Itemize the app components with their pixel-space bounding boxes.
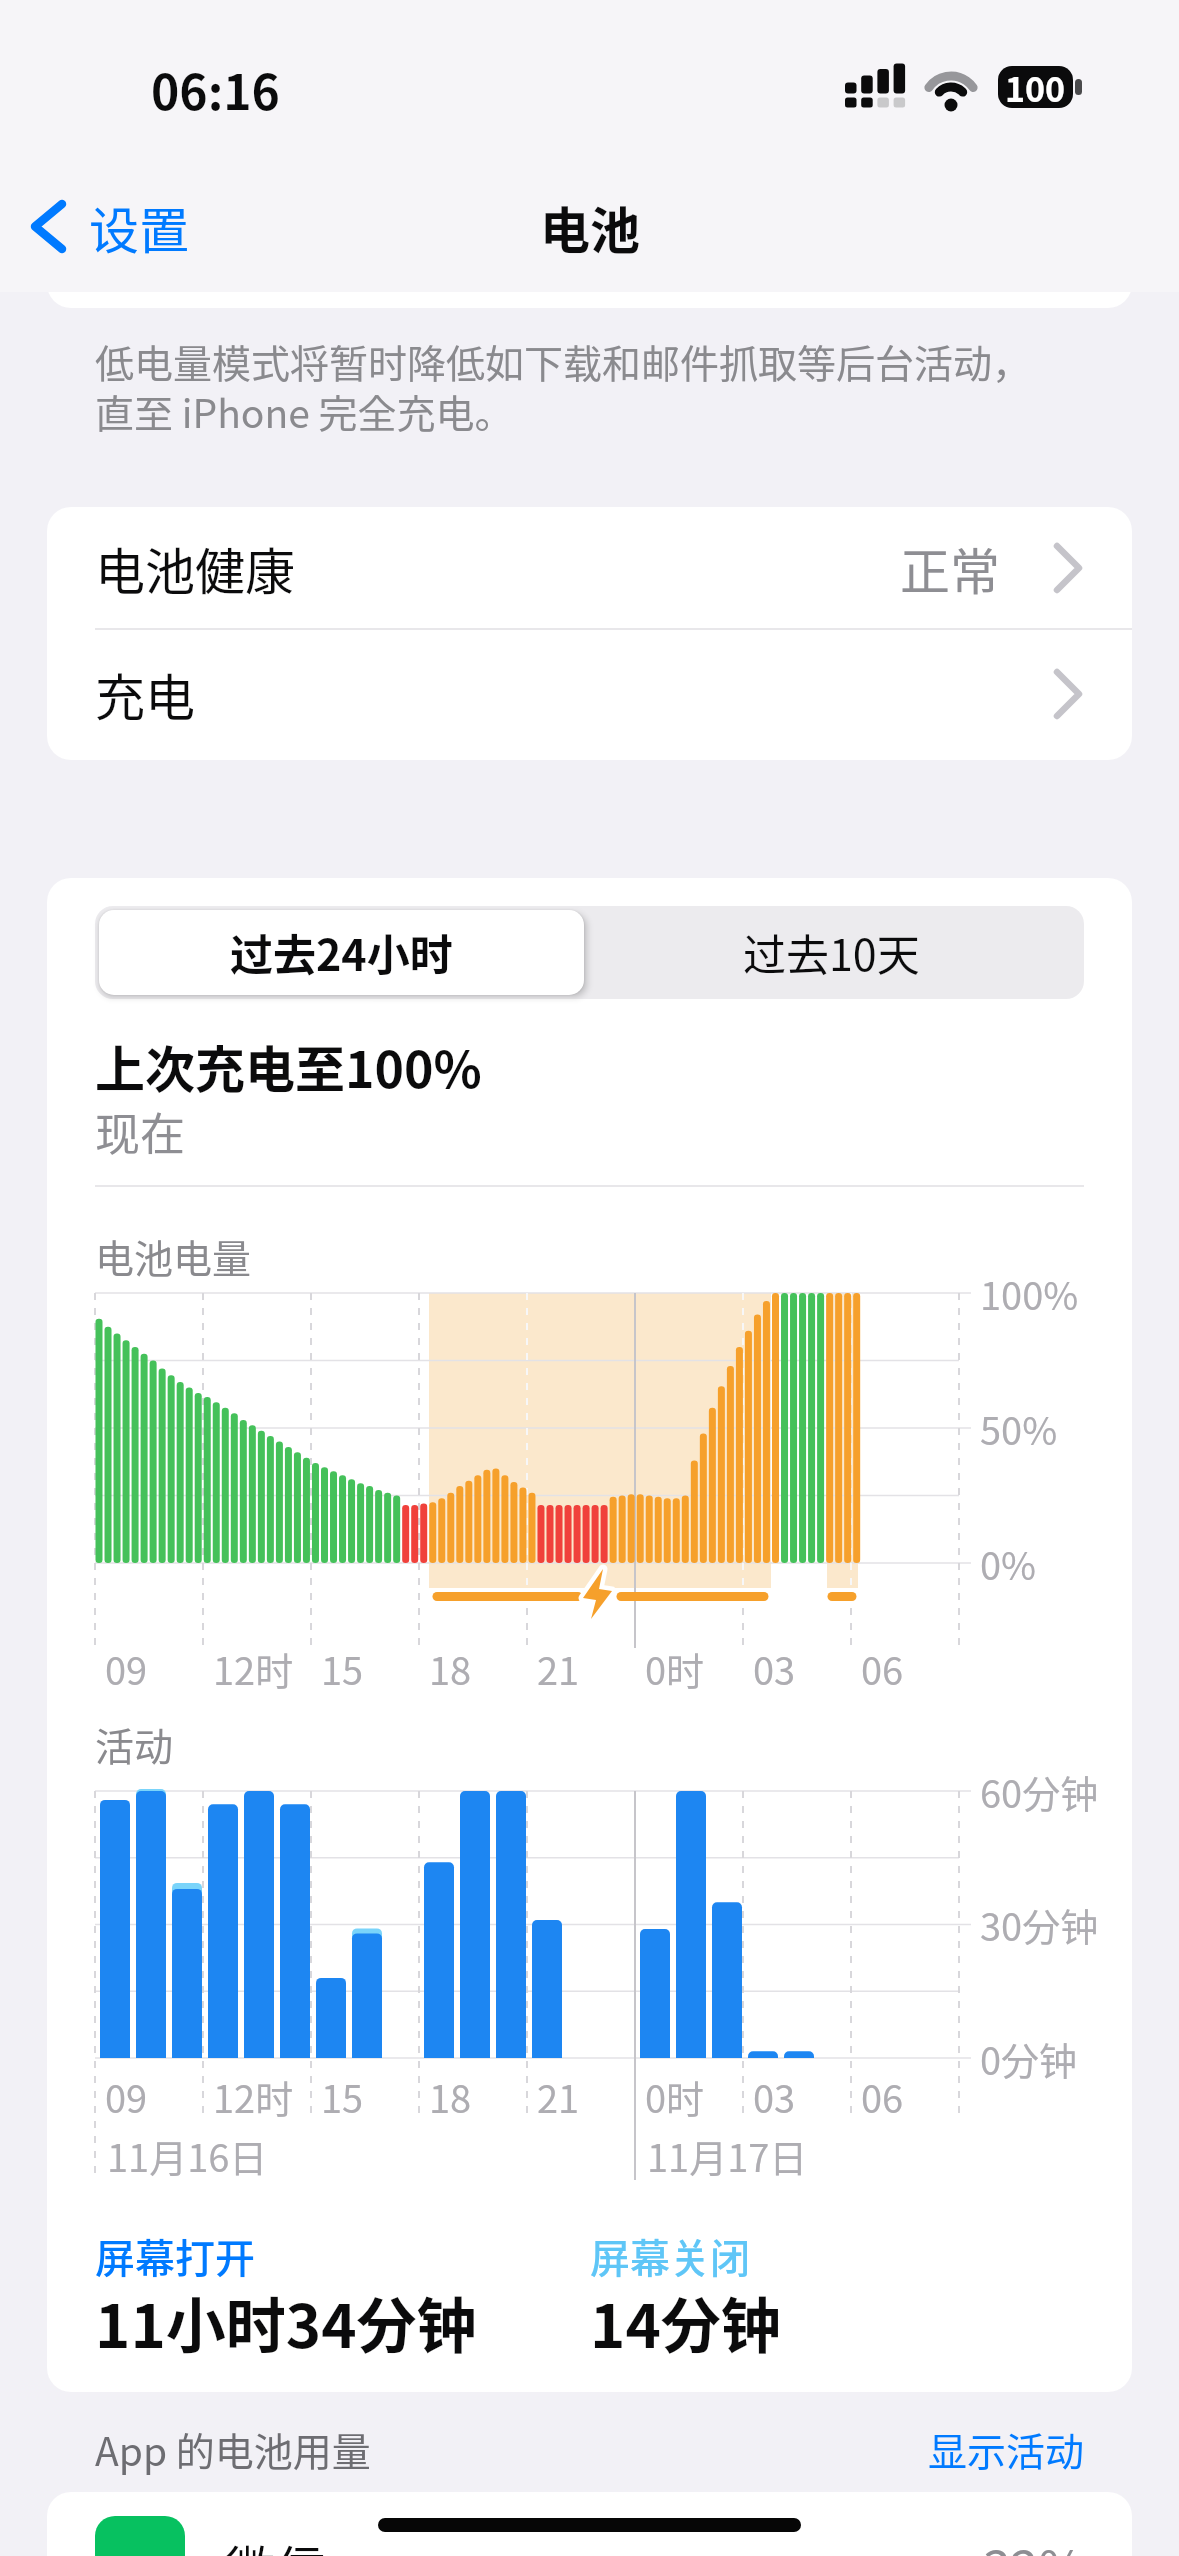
staticText: 09 [105, 2069, 148, 2124]
staticText: 15 [321, 2069, 364, 2124]
staticText: 100% [980, 1266, 1079, 1321]
staticText: 30分钟 [980, 1897, 1099, 1952]
staticText: 18 [429, 2069, 472, 2124]
staticText: 09 [105, 1641, 148, 1696]
staticText: 电池 [540, 191, 640, 263]
staticText: 18 [429, 1641, 472, 1696]
staticText: 06 [861, 1641, 904, 1696]
button[interactable]: 设置 [89, 177, 229, 277]
staticText: 06 [861, 2069, 904, 2124]
staticText: 15 [321, 1641, 364, 1696]
staticText: 03 [753, 1641, 796, 1696]
staticText: 上次充电至100% [95, 1030, 482, 1102]
staticText: 屏幕打开 [95, 2227, 255, 2285]
staticText: 11月17日 [647, 2128, 808, 2183]
staticText: 微信 [225, 2530, 325, 2556]
button[interactable] [47, 630, 1132, 760]
staticText: 11小时34分钟 [95, 2278, 477, 2365]
staticText: 正常 [900, 532, 1000, 604]
button[interactable]: 过去10天 [584, 909, 1079, 995]
staticText: 32% [983, 2530, 1085, 2556]
button[interactable] [99, 910, 584, 995]
staticText: 0% [980, 1536, 1037, 1591]
staticText: 14分钟 [590, 2278, 781, 2365]
staticText: 50% [980, 1401, 1058, 1456]
staticText: 电池电量 [95, 1228, 252, 1284]
staticText: 显示活动 [928, 2421, 1085, 2477]
staticText: App 的电池用量 [95, 2421, 371, 2477]
staticText: 12时 [213, 1641, 294, 1696]
button[interactable] [47, 507, 1132, 629]
staticText: 60分钟 [980, 1764, 1099, 1819]
staticText: 直至 iPhone 完全充电。 [95, 383, 514, 439]
staticText: 低电量模式将暂时降低如下载和邮件抓取等后台活动， [95, 333, 1032, 389]
staticText: 屏幕关闭 [590, 2227, 750, 2285]
staticText: 活动 [95, 1716, 174, 1772]
button[interactable] [47, 2492, 1132, 2556]
staticText: 0分钟 [980, 2031, 1078, 2086]
staticText: 12时 [213, 2069, 294, 2124]
staticText: 设置 [89, 191, 189, 263]
staticText: 过去10天 [743, 921, 920, 983]
button[interactable]: 显示活动 [700, 2410, 1085, 2488]
staticText: 03 [753, 2069, 796, 2124]
staticText: 电池健康 [95, 532, 295, 604]
staticText: 100 [1005, 63, 1066, 112]
staticText: 0时 [645, 1641, 705, 1696]
staticText: 充电 [95, 658, 195, 730]
staticText: 06:16 [151, 54, 280, 124]
staticText: 21 [537, 2069, 580, 2124]
staticText: 现在 [95, 1099, 186, 1164]
staticText: 11月16日 [107, 2128, 268, 2183]
staticText: 21 [537, 1641, 580, 1696]
staticText: 过去24小时 [230, 921, 453, 983]
staticText: 0时 [645, 2069, 705, 2124]
